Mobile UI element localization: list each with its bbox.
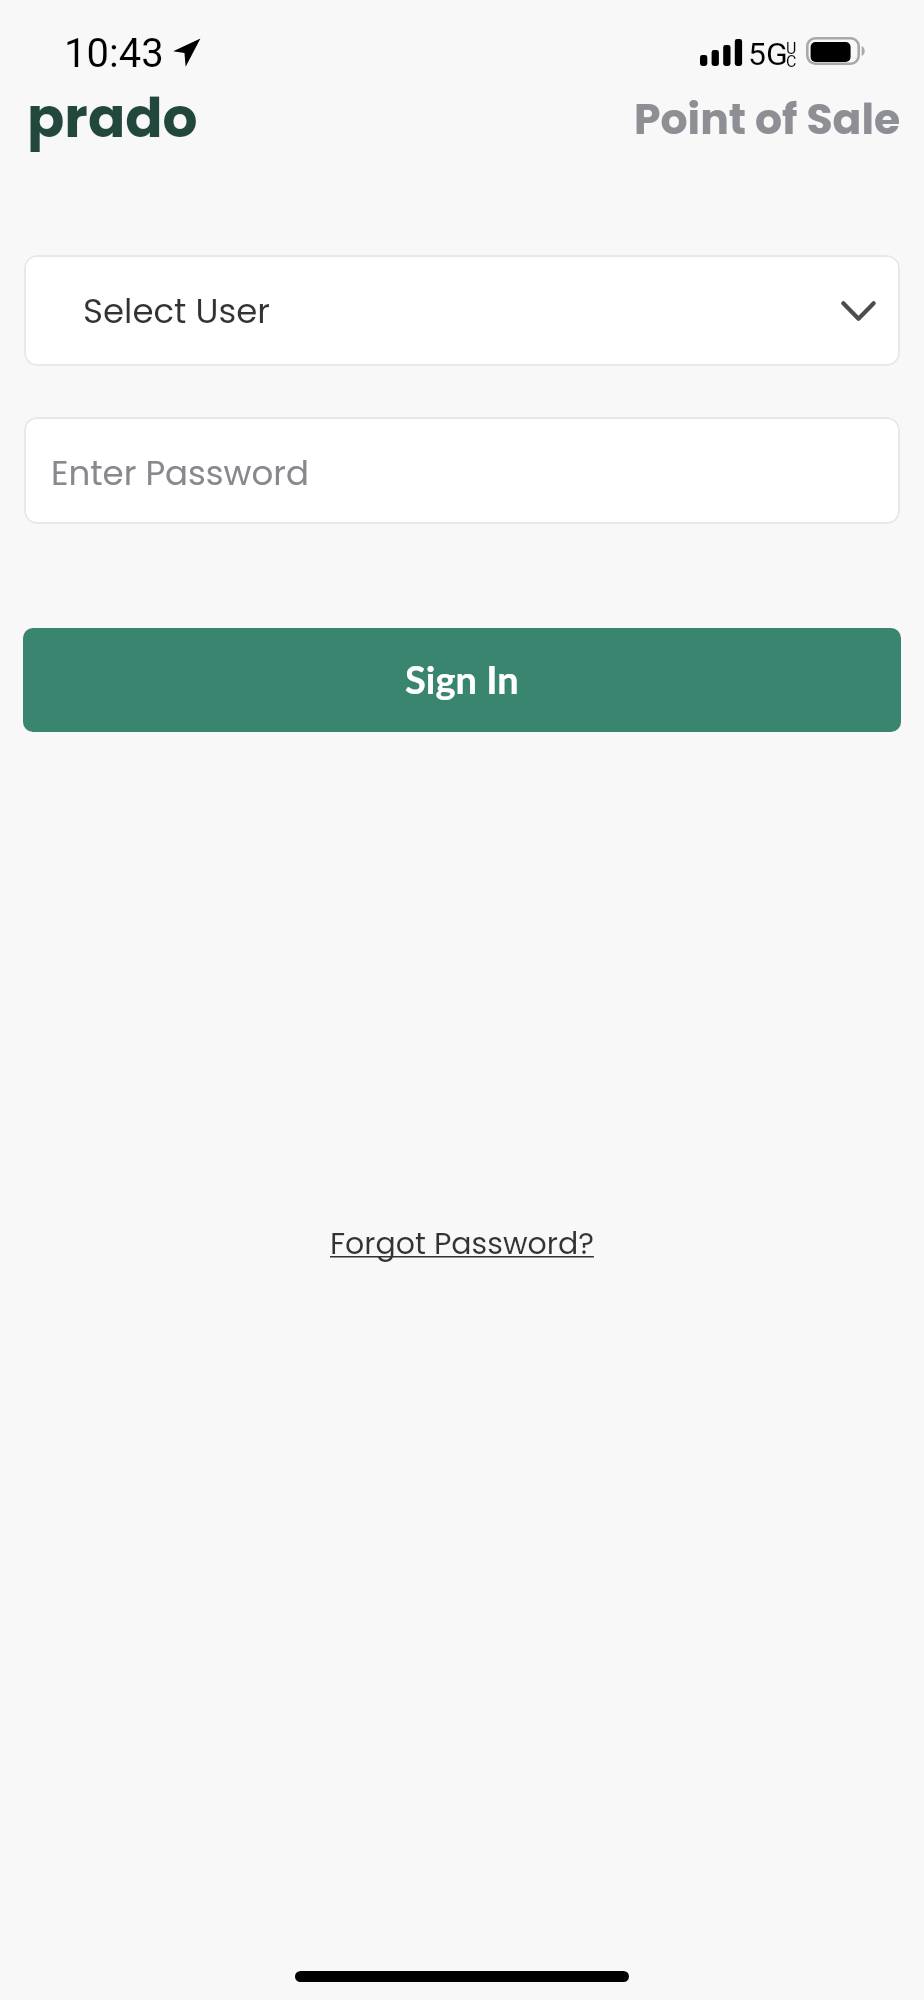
staticText: U	[786, 39, 797, 58]
staticText: Point of Sale	[634, 89, 901, 148]
staticText: Forgot Password?	[330, 1223, 594, 1265]
other: Cellular signal	[700, 38, 742, 66]
other: Location services active	[172, 38, 201, 67]
staticText: prado	[27, 79, 198, 156]
button[interactable]: Sign In	[23, 628, 901, 732]
other: Battery full	[806, 37, 868, 67]
button[interactable]: Enter Password	[24, 417, 900, 524]
staticText: 10:43	[64, 30, 164, 77]
staticText: C	[786, 52, 797, 71]
staticText: Select User	[83, 287, 271, 335]
staticText: Enter Password	[51, 449, 309, 497]
staticText: 5G	[748, 35, 788, 73]
button[interactable]: Select User	[24, 255, 900, 366]
button[interactable]: Forgot Password?	[311, 1210, 613, 1278]
staticText: Sign In	[405, 656, 519, 702]
